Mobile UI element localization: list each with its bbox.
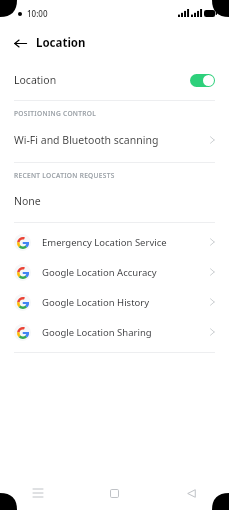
staticText: Wi-Fi and Bluetooth scanning <box>14 133 159 147</box>
button[interactable]: Wi-Fi and Bluetooth scanning <box>0 126 229 153</box>
button[interactable]: Google Location Sharing <box>0 317 229 347</box>
button[interactable]: Back <box>171 478 211 508</box>
staticText: Google Location Accuracy <box>42 266 157 279</box>
button[interactable]: Location <box>0 60 229 100</box>
button[interactable]: Home <box>94 478 134 508</box>
button[interactable]: Emergency Location Service <box>0 227 229 257</box>
button[interactable]: Google Location History <box>0 287 229 317</box>
staticText: None <box>14 194 41 208</box>
button[interactable]: Location toggle, on <box>190 74 215 87</box>
staticText: Location <box>36 35 86 51</box>
button[interactable]: Google Location Accuracy <box>0 257 229 287</box>
staticText: Emergency Location Service <box>42 236 167 249</box>
button[interactable]: Back <box>8 31 32 55</box>
staticText: Location <box>14 73 57 87</box>
staticText: POSITIONING CONTROL <box>14 109 97 118</box>
staticText: Google Location Sharing <box>42 326 152 339</box>
staticText: RECENT LOCATION REQUESTS <box>14 171 115 180</box>
staticText: Google Location History <box>42 296 150 309</box>
staticText: 10:00 <box>27 8 48 19</box>
button[interactable]: Recent apps <box>18 478 58 508</box>
